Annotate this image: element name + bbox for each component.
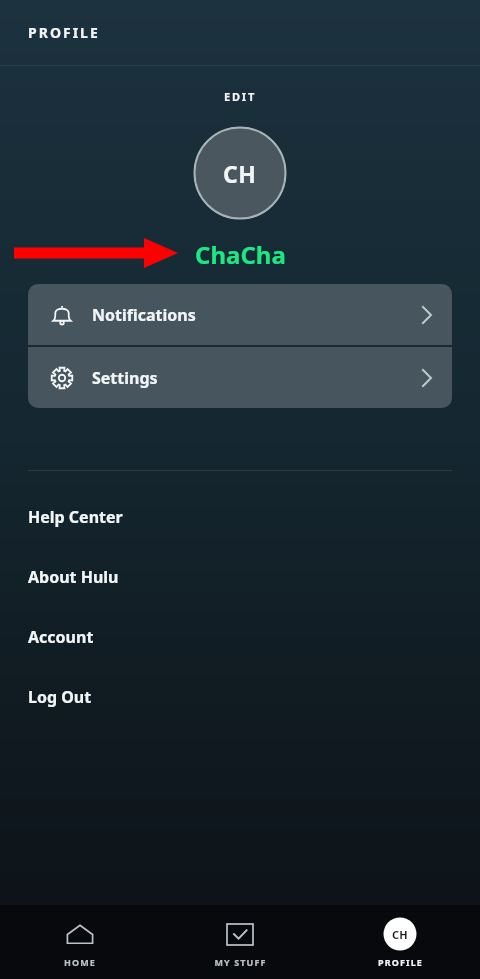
staticText: CH bbox=[223, 158, 257, 189]
staticText: PROFILE bbox=[28, 23, 100, 42]
button[interactable]: EDIT bbox=[212, 83, 269, 110]
staticText: Notifications bbox=[92, 304, 196, 326]
staticText: About Hulu bbox=[28, 566, 119, 588]
staticText: CH bbox=[392, 927, 409, 942]
staticText: ChaCha bbox=[195, 238, 286, 271]
other: Home bbox=[65, 923, 95, 945]
staticText: HOME bbox=[64, 956, 96, 968]
other: Profile bbox=[383, 917, 417, 951]
button[interactable]: About Hulu bbox=[0, 547, 480, 607]
other: My Stuff bbox=[226, 923, 254, 946]
button[interactable]: Profile bbox=[320, 909, 480, 976]
staticText: MY STUFF bbox=[214, 956, 267, 968]
button[interactable]: Profile avatar CH bbox=[193, 126, 287, 220]
button[interactable]: Notifications bbox=[28, 284, 452, 345]
button[interactable]: Help Center bbox=[0, 487, 480, 547]
staticText: Help Center bbox=[28, 506, 123, 528]
staticText: Log Out bbox=[28, 686, 92, 708]
staticText: Settings bbox=[92, 367, 158, 389]
button[interactable]: Log Out bbox=[0, 667, 480, 727]
staticText: PROFILE bbox=[378, 956, 423, 968]
button[interactable]: Account bbox=[0, 607, 480, 667]
button[interactable]: Home bbox=[0, 909, 160, 976]
button[interactable]: My Stuff bbox=[160, 909, 320, 976]
staticText: EDIT bbox=[224, 89, 257, 104]
staticText: Account bbox=[28, 626, 94, 648]
button[interactable]: Settings bbox=[28, 347, 452, 408]
